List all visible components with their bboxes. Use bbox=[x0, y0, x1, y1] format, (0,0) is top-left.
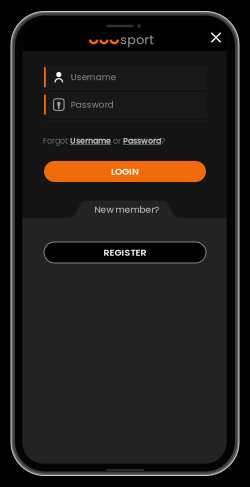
staticText: REGISTER bbox=[103, 246, 146, 259]
staticText: sport bbox=[120, 31, 154, 49]
button[interactable]: REGISTER bbox=[44, 242, 206, 263]
staticText: Username bbox=[70, 135, 111, 147]
staticText: Username bbox=[71, 71, 116, 83]
staticText: LOGIN bbox=[111, 165, 139, 178]
staticText: Password bbox=[123, 135, 161, 147]
staticText: or bbox=[111, 135, 123, 147]
staticText: Forgot bbox=[43, 135, 70, 147]
staticText: New member? bbox=[94, 203, 159, 216]
button[interactable]: LOGIN bbox=[44, 161, 206, 182]
staticText: Password bbox=[71, 98, 114, 111]
button[interactable]: Close bbox=[204, 25, 228, 49]
staticText: ? bbox=[161, 135, 165, 147]
